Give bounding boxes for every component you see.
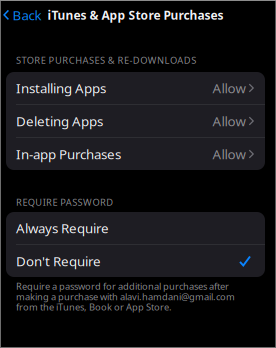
staticText: Require a password for additional purcha…: [16, 280, 235, 313]
staticText: Allow: [212, 79, 245, 97]
staticText: STORE PURCHASES & RE-DOWNLOADS: [16, 54, 196, 66]
staticText: Always Require: [16, 219, 109, 237]
staticText: Deleting Apps: [16, 112, 103, 130]
button[interactable]: Don't Require: [6, 245, 265, 277]
staticText: Installing Apps: [16, 79, 106, 97]
button[interactable]: Installing Apps: [6, 72, 265, 104]
staticText: Don't Require: [16, 252, 101, 270]
staticText: In-app Purchases: [16, 145, 121, 163]
staticText: Allow: [212, 145, 245, 163]
staticText: Allow: [212, 112, 245, 130]
staticText: REQUIRE PASSWORD: [16, 196, 113, 208]
staticText: Back: [12, 6, 41, 24]
button[interactable]: In-app Purchases: [6, 138, 265, 170]
staticText: iTunes & App Store Purchases: [47, 7, 223, 23]
button[interactable]: Deleting Apps: [6, 105, 265, 137]
button[interactable]: Always Require: [6, 212, 265, 244]
button[interactable]: Back: [0, 3, 44, 27]
